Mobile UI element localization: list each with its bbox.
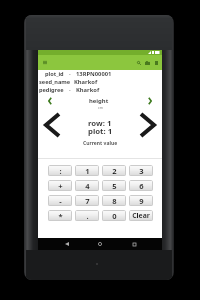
staticText: plot_id: [45, 70, 64, 78]
button[interactable]: Previous trait: [43, 94, 56, 108]
staticText: 4: [85, 181, 90, 191]
button[interactable]: 9: [129, 195, 153, 206]
staticText: 13RPN00001: [76, 70, 112, 78]
button[interactable]: Search: [134, 58, 143, 67]
button[interactable]: 7: [75, 195, 99, 206]
button[interactable]: Clear: [129, 210, 153, 221]
staticText: 9: [139, 196, 144, 206]
staticText: ·: [69, 70, 71, 78]
staticText: 1: [85, 166, 90, 176]
button[interactable]: Back: [62, 239, 72, 249]
staticText: plot: 1: [88, 126, 113, 137]
button[interactable]: Recents: [129, 239, 139, 249]
staticText: Current value: [83, 140, 118, 147]
staticText: ·: [69, 86, 71, 94]
button[interactable]: Menu: [40, 58, 49, 67]
button[interactable]: +: [48, 180, 72, 191]
staticText: *: [58, 211, 63, 221]
button[interactable]: 5: [102, 180, 126, 191]
button[interactable]: Next trait: [143, 94, 156, 108]
staticText: 7: [85, 196, 90, 206]
staticText: cm: [98, 105, 103, 110]
button[interactable]: Next plot: [135, 111, 159, 139]
button[interactable]: 1: [75, 165, 99, 176]
staticText: row: 1: [88, 118, 112, 129]
button[interactable]: Previous plot: [40, 111, 64, 139]
button[interactable]: *: [48, 210, 72, 221]
button[interactable]: 2: [102, 165, 126, 176]
button[interactable]: 4: [75, 180, 99, 191]
staticText: Kharkof: [74, 78, 98, 86]
staticText: Clear: [132, 211, 150, 220]
staticText: height: [89, 97, 109, 105]
staticText: .: [86, 211, 89, 221]
staticText: 8: [112, 196, 117, 206]
staticText: -: [59, 196, 62, 206]
staticText: ·: [66, 78, 68, 86]
staticText: 6: [139, 181, 144, 191]
staticText: seed_name: [39, 78, 71, 86]
button[interactable]: -: [48, 195, 72, 206]
button[interactable]: Camera: [143, 58, 152, 67]
button[interactable]: 6: [129, 180, 153, 191]
staticText: 2: [112, 166, 117, 176]
staticText: 5: [112, 181, 117, 191]
button[interactable]: 0: [102, 210, 126, 221]
staticText: pedigree: [39, 86, 64, 94]
button[interactable]: 3: [129, 165, 153, 176]
staticText: +: [58, 181, 63, 191]
button[interactable]: 8: [102, 195, 126, 206]
button[interactable]: :: [48, 165, 72, 176]
staticText: :: [59, 166, 62, 176]
staticText: 3: [139, 166, 144, 176]
button[interactable]: Save: [152, 58, 161, 67]
staticText: 0: [112, 211, 117, 221]
staticText: Kharkof: [76, 86, 100, 94]
button[interactable]: Home: [95, 239, 105, 249]
button[interactable]: .: [75, 210, 99, 221]
